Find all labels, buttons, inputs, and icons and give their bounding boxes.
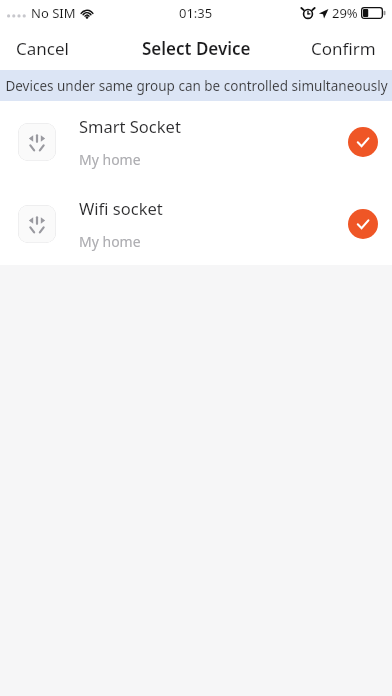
staticText: 29% bbox=[332, 4, 358, 22]
staticText: No SIM bbox=[31, 4, 76, 22]
staticText: Confirm bbox=[311, 37, 376, 60]
button[interactable]: Smart Socket bbox=[0, 101, 392, 183]
staticText: My home bbox=[79, 232, 141, 251]
staticText: Smart Socket bbox=[79, 115, 181, 137]
staticText: Wifi socket bbox=[79, 197, 163, 219]
staticText: My home bbox=[79, 150, 141, 169]
button[interactable]: Wifi socket bbox=[0, 183, 392, 265]
staticText: 01:35 bbox=[179, 4, 213, 22]
button[interactable]: Selected bbox=[348, 209, 378, 239]
staticText: Devices under same group can be controll… bbox=[5, 77, 388, 95]
button[interactable]: Cancel bbox=[0, 27, 85, 70]
button[interactable]: Confirm bbox=[295, 27, 392, 70]
staticText: Select Device bbox=[142, 37, 251, 60]
button[interactable]: Selected bbox=[348, 127, 378, 157]
staticText: Cancel bbox=[16, 37, 69, 60]
